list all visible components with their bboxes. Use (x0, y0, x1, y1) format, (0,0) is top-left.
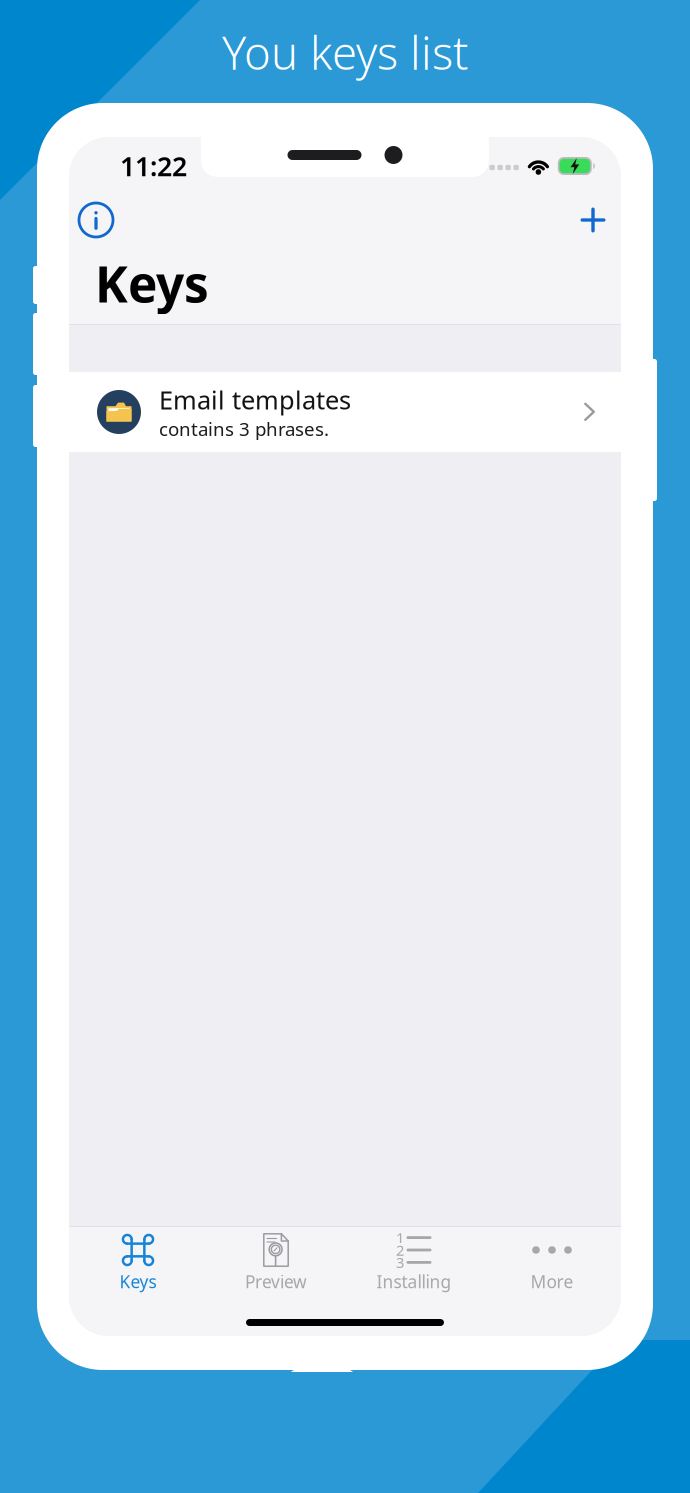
staticText: Keys (95, 250, 209, 316)
staticText: 3 (396, 1253, 404, 1272)
button[interactable]: Add key (567, 195, 619, 245)
staticText: More (530, 1270, 573, 1293)
staticText: Installing (376, 1270, 451, 1293)
staticText: 11:22 (120, 148, 187, 184)
button[interactable]: More (483, 1227, 621, 1299)
staticText: 1 (396, 1228, 404, 1247)
staticText: 2 (396, 1240, 404, 1260)
button[interactable]: Keys (69, 1227, 207, 1299)
staticText: You keys list (222, 22, 468, 82)
button[interactable]: Preview (207, 1227, 345, 1299)
staticText: Preview (245, 1270, 307, 1293)
staticText: Email templates (159, 383, 351, 416)
button[interactable]: Information (70, 195, 122, 245)
staticText: contains 3 phrases. (159, 416, 329, 441)
button[interactable]: 1 (345, 1227, 483, 1299)
button[interactable]: Email templates (69, 372, 621, 452)
staticText: Keys (119, 1270, 156, 1293)
